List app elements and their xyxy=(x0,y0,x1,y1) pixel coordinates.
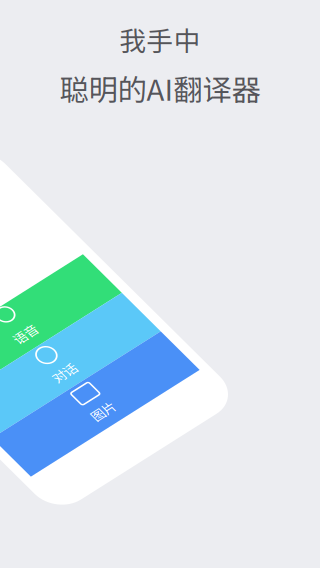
staticText: 我手中 xyxy=(119,20,200,59)
staticText: 图片 xyxy=(99,286,125,306)
staticText: 聪明的AI翻译器 xyxy=(59,67,260,109)
